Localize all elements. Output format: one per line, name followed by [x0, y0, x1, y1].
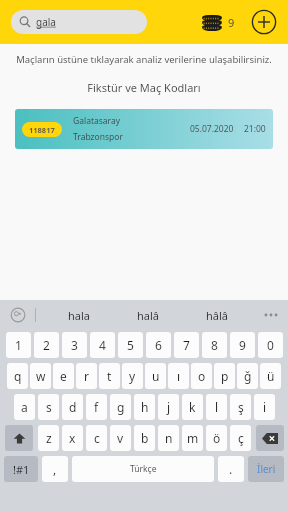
- staticText: 21:00: [244, 123, 266, 135]
- staticText: m: [187, 430, 199, 446]
- staticText: 7: [183, 337, 190, 353]
- staticText: .: [229, 461, 233, 477]
- staticText: i: [263, 399, 267, 415]
- button[interactable]: 1: [6, 332, 31, 358]
- staticText: ş: [238, 399, 244, 415]
- staticText: İleri: [257, 462, 276, 476]
- button[interactable]: 4: [90, 332, 115, 358]
- button[interactable]: İleri: [248, 456, 284, 482]
- button[interactable]: 2: [34, 332, 59, 358]
- staticText: s: [46, 399, 52, 415]
- button[interactable]: halâ: [133, 305, 163, 326]
- button[interactable]: .: [218, 456, 244, 482]
- button[interactable]: o: [191, 363, 212, 389]
- button[interactable]: 0: [258, 332, 283, 358]
- button[interactable]: f: [86, 394, 107, 420]
- staticText: ,: [53, 461, 57, 477]
- staticText: b: [141, 430, 149, 446]
- staticText: !#1: [13, 462, 30, 477]
- button[interactable]: ,: [42, 456, 68, 482]
- button[interactable]: u: [145, 363, 166, 389]
- button[interactable]: g: [110, 394, 131, 420]
- staticText: h: [141, 399, 149, 415]
- staticText: ü: [267, 368, 275, 384]
- staticText: Trabzonspor: [73, 131, 123, 143]
- staticText: r: [84, 368, 89, 384]
- staticText: 5: [127, 337, 134, 353]
- button[interactable]: 118817: [15, 109, 273, 149]
- staticText: a: [21, 399, 28, 415]
- button[interactable]: a: [14, 394, 35, 420]
- button[interactable]: 6: [146, 332, 171, 358]
- staticText: j: [167, 399, 171, 415]
- staticText: u: [152, 368, 160, 384]
- button[interactable]: w: [30, 363, 51, 389]
- button[interactable]: ı: [168, 363, 189, 389]
- button[interactable]: ç: [230, 425, 251, 451]
- button[interactable]: z: [38, 425, 59, 451]
- staticText: k: [189, 399, 196, 415]
- staticText: p: [221, 368, 229, 384]
- staticText: w: [36, 368, 46, 384]
- staticText: 2: [43, 337, 50, 353]
- button[interactable]: t: [99, 363, 120, 389]
- staticText: ç: [238, 430, 244, 446]
- button[interactable]: Shift: [5, 425, 33, 451]
- staticText: g: [117, 399, 125, 415]
- staticText: ö: [213, 430, 221, 446]
- button[interactable]: d: [62, 394, 83, 420]
- staticText: v: [117, 430, 124, 446]
- button[interactable]: n: [158, 425, 179, 451]
- button[interactable]: Keyboard options: [10, 307, 26, 323]
- staticText: 9: [228, 15, 235, 30]
- staticText: Türkçe: [130, 463, 157, 475]
- button[interactable]: !#1: [4, 456, 38, 482]
- staticText: 0: [267, 337, 274, 353]
- button[interactable]: c: [86, 425, 107, 451]
- button[interactable]: s: [38, 394, 59, 420]
- button[interactable]: 8: [202, 332, 227, 358]
- button[interactable]: m: [182, 425, 203, 451]
- button[interactable]: ü: [260, 363, 281, 389]
- button[interactable]: q: [7, 363, 28, 389]
- button[interactable]: p: [214, 363, 235, 389]
- button[interactable]: x: [62, 425, 83, 451]
- button[interactable]: j: [158, 394, 179, 420]
- button[interactable]: e: [53, 363, 74, 389]
- button[interactable]: Türkçe: [72, 456, 214, 482]
- button[interactable]: ğ: [237, 363, 258, 389]
- button[interactable]: hâlâ: [202, 305, 232, 326]
- staticText: Galatasaray: [73, 115, 121, 127]
- button[interactable]: Add: [251, 9, 277, 35]
- staticText: hala: [68, 308, 90, 323]
- staticText: 4: [99, 337, 106, 353]
- button[interactable]: 3: [62, 332, 87, 358]
- button[interactable]: 9: [230, 332, 255, 358]
- button[interactable]: i: [254, 394, 275, 420]
- button[interactable]: Backspace: [256, 425, 284, 451]
- staticText: l: [215, 399, 219, 415]
- staticText: 118817: [29, 125, 55, 135]
- button[interactable]: ö: [206, 425, 227, 451]
- button[interactable]: 7: [174, 332, 199, 358]
- button[interactable]: l: [206, 394, 227, 420]
- button[interactable]: hala: [64, 305, 94, 326]
- button[interactable]: ş: [230, 394, 251, 420]
- button[interactable]: b: [134, 425, 155, 451]
- staticText: 1: [15, 337, 22, 353]
- staticText: c: [94, 430, 100, 446]
- staticText: o: [198, 368, 206, 384]
- staticText: e: [60, 368, 67, 384]
- button[interactable]: y: [122, 363, 143, 389]
- staticText: ğ: [244, 368, 252, 384]
- staticText: hâlâ: [206, 308, 228, 323]
- button[interactable]: Coins: [199, 12, 237, 32]
- button[interactable]: 5: [118, 332, 143, 358]
- button[interactable]: k: [182, 394, 203, 420]
- button[interactable]: More suggestions: [262, 306, 280, 324]
- button[interactable]: gala: [11, 10, 147, 34]
- button[interactable]: r: [76, 363, 97, 389]
- button[interactable]: v: [110, 425, 131, 451]
- staticText: 8: [211, 337, 218, 353]
- button[interactable]: h: [134, 394, 155, 420]
